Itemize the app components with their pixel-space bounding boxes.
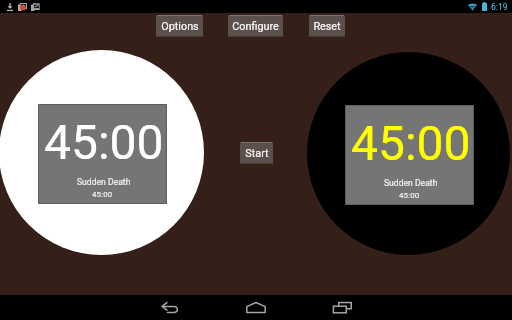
button[interactable]: 45:00	[0, 50, 204, 255]
staticText: 45:00	[44, 114, 164, 170]
staticText: 45:00	[399, 191, 420, 200]
staticText: Configure	[232, 20, 279, 33]
button[interactable]: 45:00	[307, 52, 510, 255]
staticText: Options	[161, 20, 199, 33]
staticText: 45:00	[92, 190, 113, 199]
staticText: 45:00	[351, 115, 471, 171]
button[interactable]: Options	[156, 15, 203, 37]
button[interactable]: Start	[240, 142, 273, 164]
button[interactable]: Recent apps	[314, 295, 371, 320]
staticText: Sudden Death	[77, 177, 131, 187]
button[interactable]: Configure	[228, 15, 283, 37]
button[interactable]: Reset	[309, 15, 345, 37]
staticText: Start	[245, 147, 269, 160]
button[interactable]: Home	[227, 295, 284, 320]
button[interactable]: Back	[141, 295, 198, 320]
staticText: 6:19	[491, 2, 508, 12]
staticText: Reset	[313, 20, 341, 33]
staticText: Sudden Death	[384, 178, 438, 188]
